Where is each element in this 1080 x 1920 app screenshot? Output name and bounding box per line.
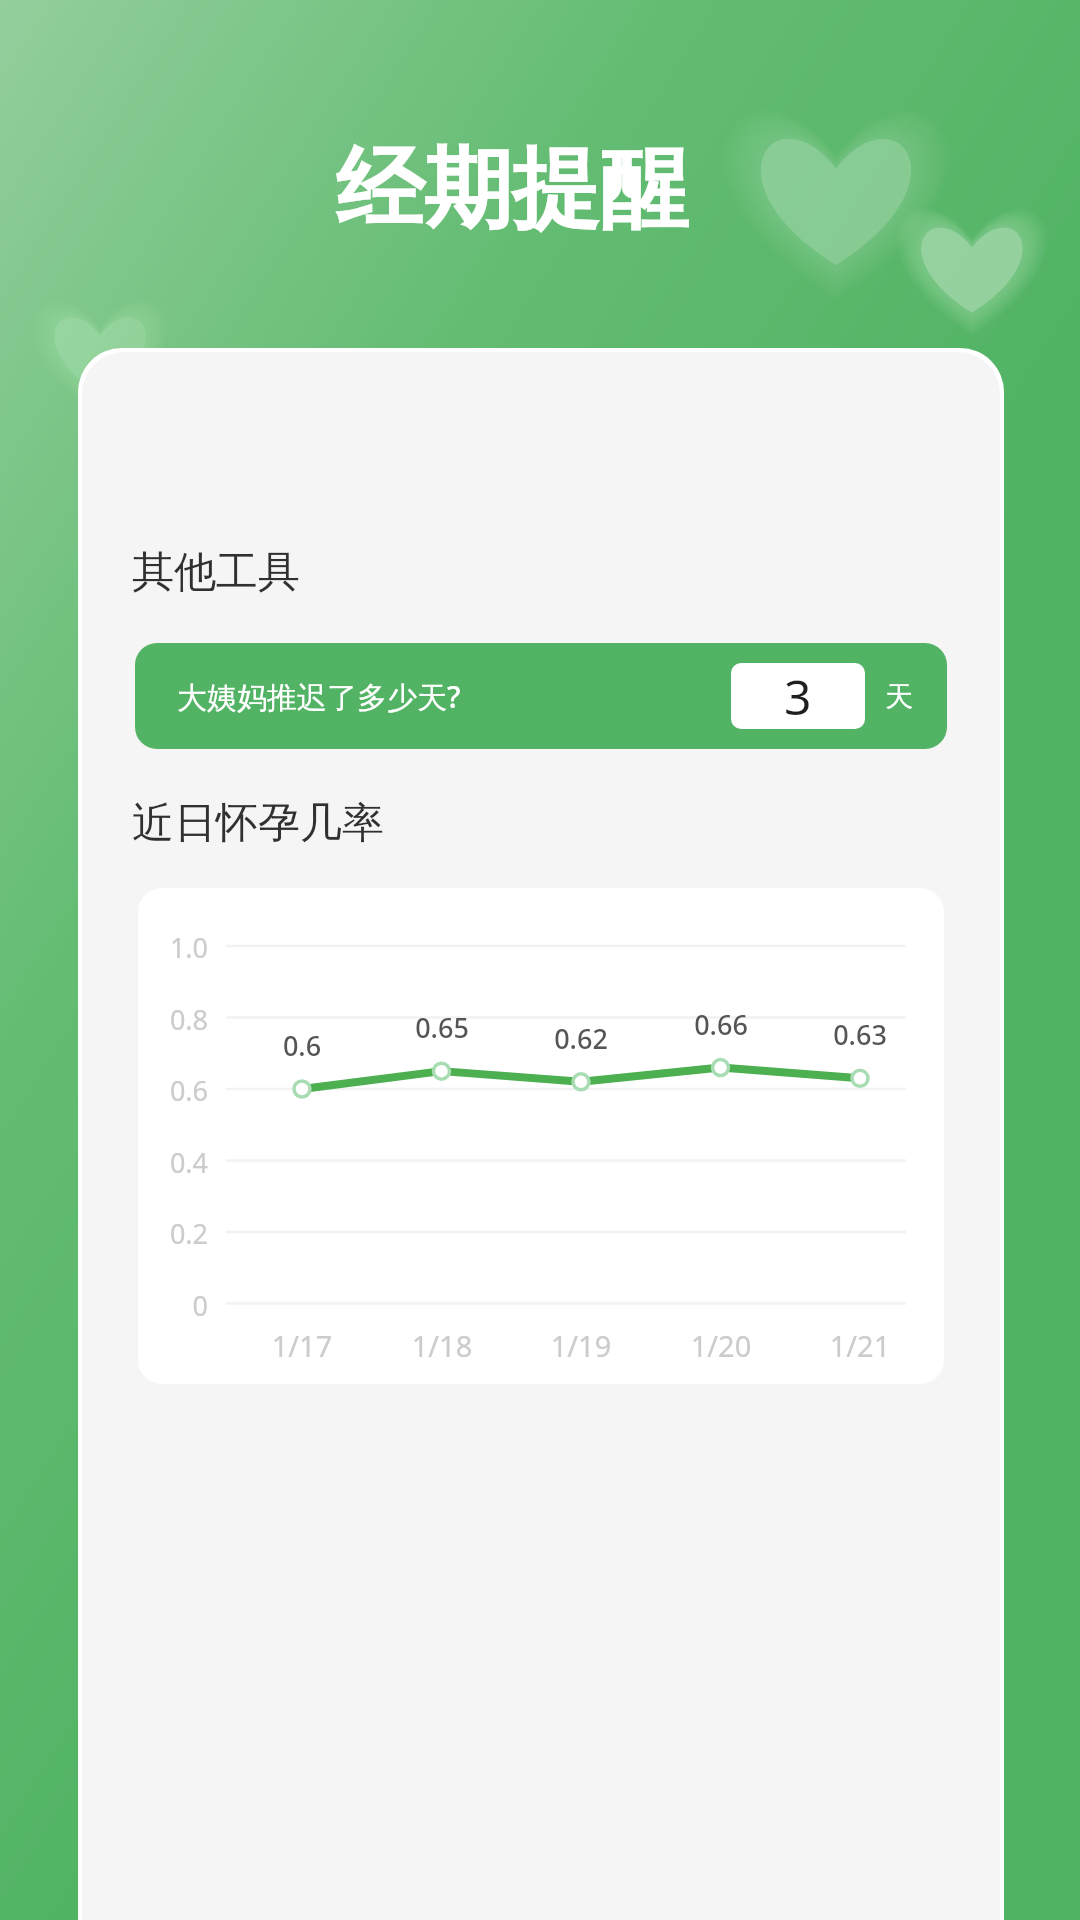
staticText: 大姨妈推迟了多少天? [177,676,461,717]
staticText: 0.65 [397,1009,487,1046]
staticText: 近日怀孕几率 [132,797,384,850]
staticText: 0.6 [257,1027,347,1064]
staticText: 其他工具 [132,546,300,599]
staticText: 1/21 [810,1326,910,1365]
staticText: 0.62 [536,1020,626,1057]
staticText: 0.8 [138,1001,208,1038]
staticText: 1/19 [531,1326,631,1365]
staticText: 0.66 [676,1006,766,1043]
staticText: 天 [885,679,913,714]
staticText: 3 [784,664,812,729]
button[interactable]: 3 [731,663,865,729]
staticText: 0.6 [138,1072,208,1109]
staticText: 0.63 [815,1016,905,1053]
staticText: 0.2 [138,1215,208,1252]
button[interactable]: 大姨妈推迟了多少天? [135,643,947,749]
staticText: 1/18 [392,1326,492,1365]
staticText: 0 [138,1287,208,1324]
staticText: 0.4 [138,1144,208,1181]
staticText: 1/17 [252,1326,352,1365]
staticText: 1.0 [138,929,208,966]
staticText: 经期提醒 [336,134,688,245]
staticText: 1/20 [671,1326,771,1365]
